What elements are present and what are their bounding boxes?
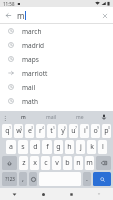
staticText: m: [21, 114, 26, 121]
staticText: y: [61, 126, 65, 136]
staticText: march: [22, 27, 42, 36]
button[interactable]: Settings: [0, 111, 10, 123]
staticText: 11:58: [3, 1, 15, 7]
button[interactable]: Home: [29, 188, 57, 200]
button[interactable]: Search: [93, 172, 111, 186]
button[interactable]: Back: [0, 7, 17, 24]
staticText: ?123: [5, 176, 15, 182]
staticText: e: [28, 126, 32, 136]
staticText: 7: [75, 125, 78, 130]
staticText: 6: [64, 125, 67, 130]
button[interactable]: r: [36, 124, 45, 138]
staticText: l: [102, 142, 104, 152]
staticText: z: [22, 158, 26, 168]
button[interactable]: l: [98, 140, 107, 154]
staticText: r: [39, 126, 42, 136]
button[interactable]: Emoji: [29, 172, 37, 186]
button[interactable]: i: [80, 124, 89, 138]
staticText: o: [93, 126, 98, 136]
staticText: w: [16, 126, 22, 136]
button[interactable]: .: [83, 172, 91, 186]
button[interactable]: Clear: [96, 7, 113, 24]
staticText: mail: [22, 83, 36, 92]
button[interactable]: Back: [0, 188, 29, 200]
staticText: b: [65, 158, 70, 168]
button[interactable]: mail: [36, 111, 66, 123]
button[interactable]: j: [76, 140, 85, 154]
staticText: c: [44, 158, 48, 168]
staticText: 1: [9, 125, 12, 130]
button[interactable]: s: [18, 140, 28, 154]
button[interactable]: z: [19, 156, 28, 170]
button[interactable]: Backspace: [96, 156, 111, 170]
button[interactable]: m: [10, 111, 36, 123]
button[interactable]: ,: [19, 172, 27, 186]
button[interactable]: mail: [0, 80, 113, 94]
staticText: mail: [46, 114, 57, 121]
staticText: ⋮: [2, 114, 8, 121]
button[interactable]: madrid: [0, 38, 113, 52]
staticText: ,: [22, 174, 24, 184]
staticText: math: [22, 97, 39, 106]
button[interactable]: o: [91, 124, 100, 138]
staticText: s: [21, 142, 25, 152]
staticText: v: [55, 158, 59, 168]
button[interactable]: b: [63, 156, 72, 170]
button[interactable]: Shift: [2, 156, 17, 170]
button[interactable]: k: [87, 140, 96, 154]
button[interactable]: p: [102, 124, 111, 138]
staticText: d: [33, 142, 38, 152]
staticText: k: [90, 142, 94, 152]
button[interactable]: ?123: [2, 172, 17, 186]
button[interactable]: me: [66, 111, 94, 123]
staticText: x: [33, 158, 37, 168]
button[interactable]: v: [52, 156, 61, 170]
staticText: madrid: [22, 41, 45, 50]
button[interactable]: maps: [0, 52, 113, 66]
staticText: f: [46, 142, 49, 152]
staticText: p: [104, 126, 109, 136]
staticText: 4: [42, 125, 45, 130]
button[interactable]: u: [69, 124, 78, 138]
staticText: marriott: [22, 69, 48, 78]
staticText: m: [17, 10, 25, 21]
staticText: 0: [108, 125, 111, 130]
button[interactable]: x: [30, 156, 39, 170]
staticText: 5: [53, 125, 56, 130]
staticText: i: [84, 126, 86, 136]
button[interactable]: h: [65, 140, 74, 154]
staticText: a: [9, 142, 13, 152]
button[interactable]: Voice input: [94, 111, 113, 123]
button[interactable]: g: [54, 140, 63, 154]
button[interactable]: march: [0, 24, 113, 38]
staticText: .: [86, 174, 88, 184]
staticText: 9: [97, 125, 100, 130]
button[interactable]: Hide keyboard: [85, 188, 113, 200]
button[interactable]: y: [58, 124, 67, 138]
staticText: 3: [31, 125, 34, 130]
staticText: 2: [20, 125, 23, 130]
button[interactable]: e: [25, 124, 34, 138]
staticText: q: [5, 126, 10, 136]
button[interactable]: d: [30, 140, 40, 154]
staticText: u: [71, 126, 76, 136]
staticText: t: [50, 126, 53, 136]
button[interactable]: a: [6, 140, 16, 154]
button[interactable]: t: [47, 124, 56, 138]
button[interactable]: n: [74, 156, 83, 170]
button[interactable]: marriott: [0, 66, 113, 80]
button[interactable]: q: [2, 124, 12, 138]
staticText: h: [67, 142, 72, 152]
staticText: n: [76, 158, 81, 168]
button[interactable]: c: [41, 156, 50, 170]
staticText: maps: [22, 55, 39, 64]
staticText: me: [76, 114, 84, 121]
button[interactable]: Recents: [57, 188, 85, 200]
staticText: m: [86, 158, 93, 168]
staticText: 8: [86, 125, 89, 130]
button[interactable]: f: [42, 140, 52, 154]
button[interactable]: math: [0, 94, 113, 108]
button[interactable]: w: [14, 124, 23, 138]
button[interactable]: m: [85, 156, 94, 170]
